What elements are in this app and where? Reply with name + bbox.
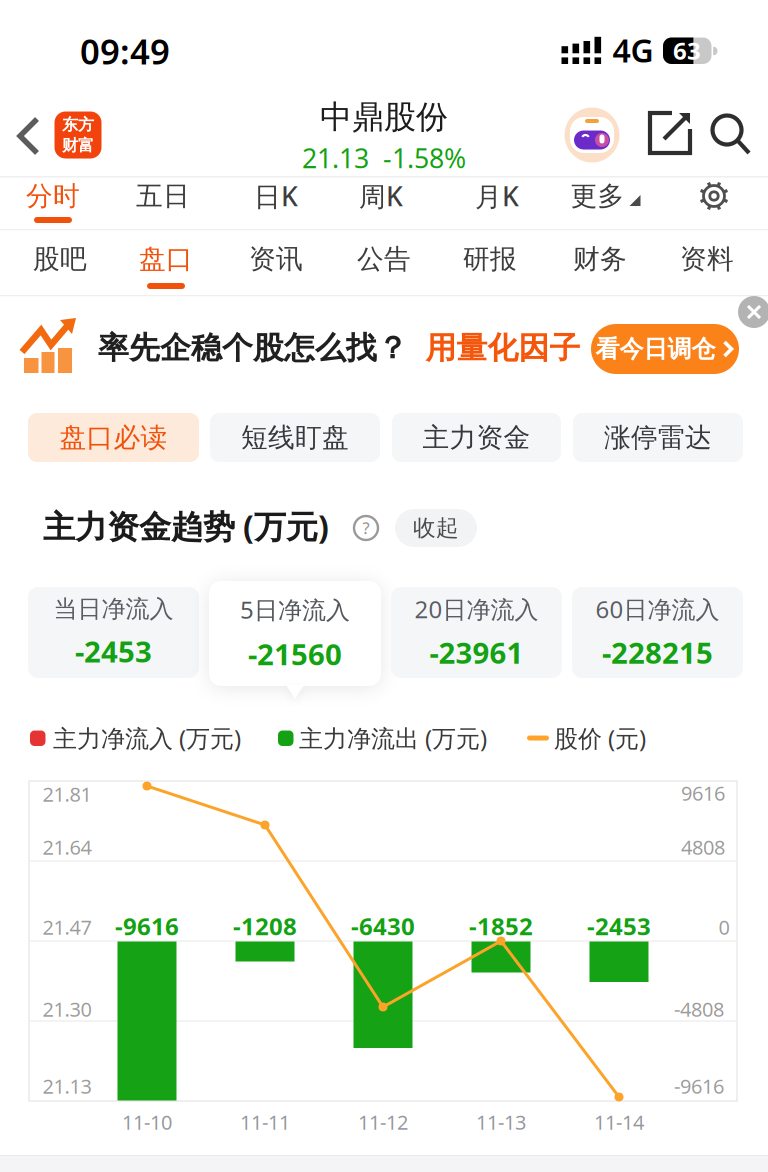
staticText: 主力净流入 (万元) bbox=[53, 722, 241, 754]
staticText: 21.64 bbox=[42, 834, 91, 860]
button[interactable]: 看今日调仓 bbox=[591, 324, 739, 374]
staticText: 日K bbox=[254, 178, 298, 214]
staticText: 用量化因子 bbox=[425, 329, 580, 367]
button[interactable]: 设置 bbox=[696, 178, 732, 214]
staticText: 涨停雷达 bbox=[604, 421, 712, 454]
button[interactable]: 帮助 bbox=[352, 514, 380, 542]
button[interactable]: 5日净流入 bbox=[209, 581, 381, 686]
staticText: 资料 bbox=[680, 243, 734, 275]
staticText: 21.47 bbox=[42, 914, 91, 940]
staticText: 21.81 bbox=[42, 781, 91, 807]
staticText: -2453 bbox=[75, 632, 152, 671]
button[interactable]: Back bbox=[13, 116, 47, 156]
button[interactable]: 盘口必读 bbox=[28, 413, 199, 462]
staticText: 9616 bbox=[681, 780, 725, 806]
button[interactable]: 更多 bbox=[560, 171, 652, 221]
staticText: 月K bbox=[475, 178, 519, 214]
staticText: -2453 bbox=[587, 910, 651, 942]
staticText: 11-13 bbox=[476, 1109, 526, 1135]
staticText: 主力资金 bbox=[422, 421, 530, 454]
staticText: 11-10 bbox=[122, 1109, 172, 1135]
staticText: 11-12 bbox=[358, 1109, 408, 1135]
staticText: 60日净流入 bbox=[595, 593, 719, 625]
button[interactable]: AI助手 bbox=[564, 107, 619, 162]
button[interactable]: 涨停雷达 bbox=[573, 413, 743, 462]
staticText: 11-14 bbox=[594, 1109, 644, 1135]
button[interactable]: 月K bbox=[450, 171, 544, 221]
staticText: 4808 bbox=[681, 834, 725, 860]
staticText: 分时 bbox=[26, 180, 80, 212]
button[interactable]: 东方财富 bbox=[54, 111, 101, 158]
staticText: 63 bbox=[673, 35, 701, 66]
button[interactable]: 公告 bbox=[337, 234, 431, 284]
staticText: 11-11 bbox=[240, 1109, 290, 1135]
staticText: 盘口 bbox=[139, 243, 193, 275]
staticText: 东方 bbox=[62, 115, 94, 134]
staticText: 资讯 bbox=[249, 243, 303, 275]
staticText: 5日净流入 bbox=[240, 594, 350, 625]
staticText: 盘口必读 bbox=[59, 421, 167, 454]
button[interactable]: 短线盯盘 bbox=[210, 413, 380, 462]
staticText: 主力资金趋势 (万元) bbox=[43, 505, 329, 547]
button[interactable]: 分享 bbox=[646, 111, 694, 157]
button[interactable]: 主力资金 bbox=[392, 413, 561, 462]
staticText: 股价 (元) bbox=[554, 722, 646, 754]
staticText: 短线盯盘 bbox=[241, 421, 349, 454]
button[interactable]: 五日 bbox=[116, 171, 210, 221]
button[interactable]: 股吧 bbox=[13, 234, 107, 284]
button[interactable]: 研报 bbox=[443, 234, 537, 284]
button[interactable]: 搜索 bbox=[709, 112, 753, 156]
button[interactable]: 财务 bbox=[553, 234, 647, 284]
staticText: 当日净流入 bbox=[53, 594, 173, 624]
button[interactable]: 分时 bbox=[6, 171, 100, 221]
staticText: -9616 bbox=[674, 1073, 724, 1099]
staticText: 公告 bbox=[357, 243, 411, 275]
staticText: 看今日调仓 bbox=[595, 334, 715, 364]
staticText: 收起 bbox=[413, 514, 459, 542]
staticText: -1208 bbox=[233, 910, 297, 942]
button[interactable]: 20日净流入 bbox=[391, 587, 562, 678]
button[interactable]: 资料 bbox=[660, 234, 754, 284]
staticText: -21560 bbox=[248, 634, 342, 673]
button[interactable]: 60日净流入 bbox=[572, 587, 743, 678]
button[interactable]: 日K bbox=[229, 171, 323, 221]
staticText: -23961 bbox=[429, 633, 523, 672]
staticText: 20日净流入 bbox=[414, 593, 538, 625]
staticText: 财富 bbox=[62, 135, 94, 155]
staticText: -9616 bbox=[115, 910, 179, 942]
button[interactable]: 收起 bbox=[395, 509, 477, 547]
staticText: 五日 bbox=[136, 180, 190, 212]
staticText: 财务 bbox=[573, 243, 627, 275]
staticText: 更多 bbox=[570, 180, 624, 212]
button[interactable]: 关闭 bbox=[738, 296, 768, 328]
staticText: 21.13 bbox=[42, 1073, 91, 1099]
button[interactable]: 资讯 bbox=[229, 234, 323, 284]
staticText: -4808 bbox=[674, 996, 724, 1022]
staticText: 中鼎股份 bbox=[320, 97, 448, 137]
staticText: 4G bbox=[612, 29, 653, 71]
staticText: 率先企稳个股怎么找？ bbox=[98, 329, 408, 367]
button[interactable]: 盘口 bbox=[119, 234, 213, 284]
staticText: 周K bbox=[359, 178, 403, 214]
staticText: 21.30 bbox=[42, 996, 91, 1022]
staticText: 研报 bbox=[463, 243, 517, 275]
staticText: 0 bbox=[718, 914, 729, 940]
staticText: 21.13 -1.58% bbox=[302, 140, 466, 176]
staticText: ? bbox=[362, 517, 369, 539]
button[interactable]: 当日净流入 bbox=[28, 587, 199, 678]
button[interactable]: 周K bbox=[334, 171, 428, 221]
staticText: 主力净流出 (万元) bbox=[299, 722, 487, 754]
staticText: -6430 bbox=[351, 910, 415, 942]
staticText: -228215 bbox=[602, 633, 713, 672]
staticText: 09:49 bbox=[80, 28, 170, 74]
staticText: 股吧 bbox=[33, 243, 87, 275]
staticText: -1852 bbox=[469, 910, 533, 942]
